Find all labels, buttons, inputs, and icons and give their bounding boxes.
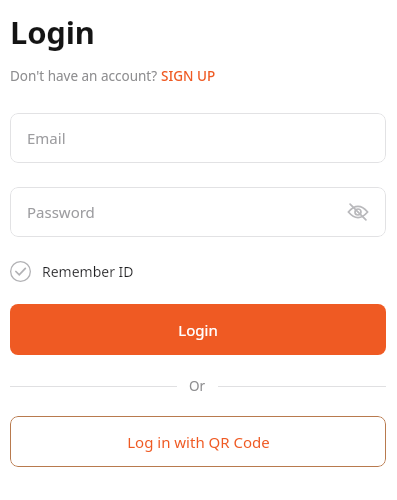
staticText: SIGN UP: [161, 67, 216, 85]
button[interactable]: Log in with QR Code: [10, 416, 386, 467]
button[interactable]: Login: [10, 304, 386, 355]
staticText: Login: [178, 320, 218, 340]
button[interactable]: SIGN UP: [161, 67, 216, 85]
staticText: Log in with QR Code: [127, 432, 270, 452]
staticText: Remember ID: [42, 262, 134, 281]
staticText: Password: [27, 202, 344, 222]
staticText: Don't have an account?: [10, 67, 161, 85]
button[interactable]: Email: [10, 113, 386, 163]
button[interactable]: Remember ID: [10, 257, 134, 286]
staticText: Email: [27, 128, 66, 148]
button[interactable]: Show password: [344, 198, 372, 226]
staticText: Login: [10, 11, 95, 53]
staticText: Or: [189, 377, 206, 395]
button[interactable]: Password: [10, 187, 386, 237]
